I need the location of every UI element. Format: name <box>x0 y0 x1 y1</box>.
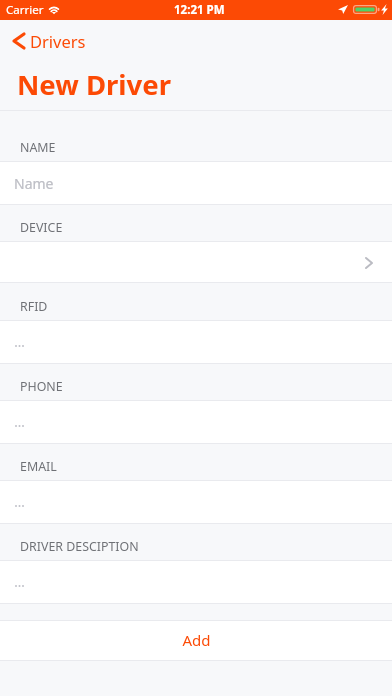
staticText: PHONE <box>20 378 63 395</box>
button[interactable]: Back to Drivers <box>0 20 98 61</box>
staticText: DRIVER DESCIPTION <box>20 538 139 555</box>
button[interactable]: Name <box>0 162 392 204</box>
staticText: EMAIL <box>20 458 57 475</box>
button[interactable]: Add <box>0 620 392 661</box>
staticText: Carrier <box>6 2 44 18</box>
staticText: Drivers <box>30 30 86 52</box>
staticText: Name <box>14 174 54 193</box>
staticText: DEVICE <box>20 219 63 236</box>
staticText: New Driver <box>17 66 171 103</box>
staticText: Add <box>182 630 211 650</box>
staticText: NAME <box>20 139 56 156</box>
staticText: RFID <box>20 298 48 315</box>
staticText: 12:21 PM <box>174 2 225 18</box>
